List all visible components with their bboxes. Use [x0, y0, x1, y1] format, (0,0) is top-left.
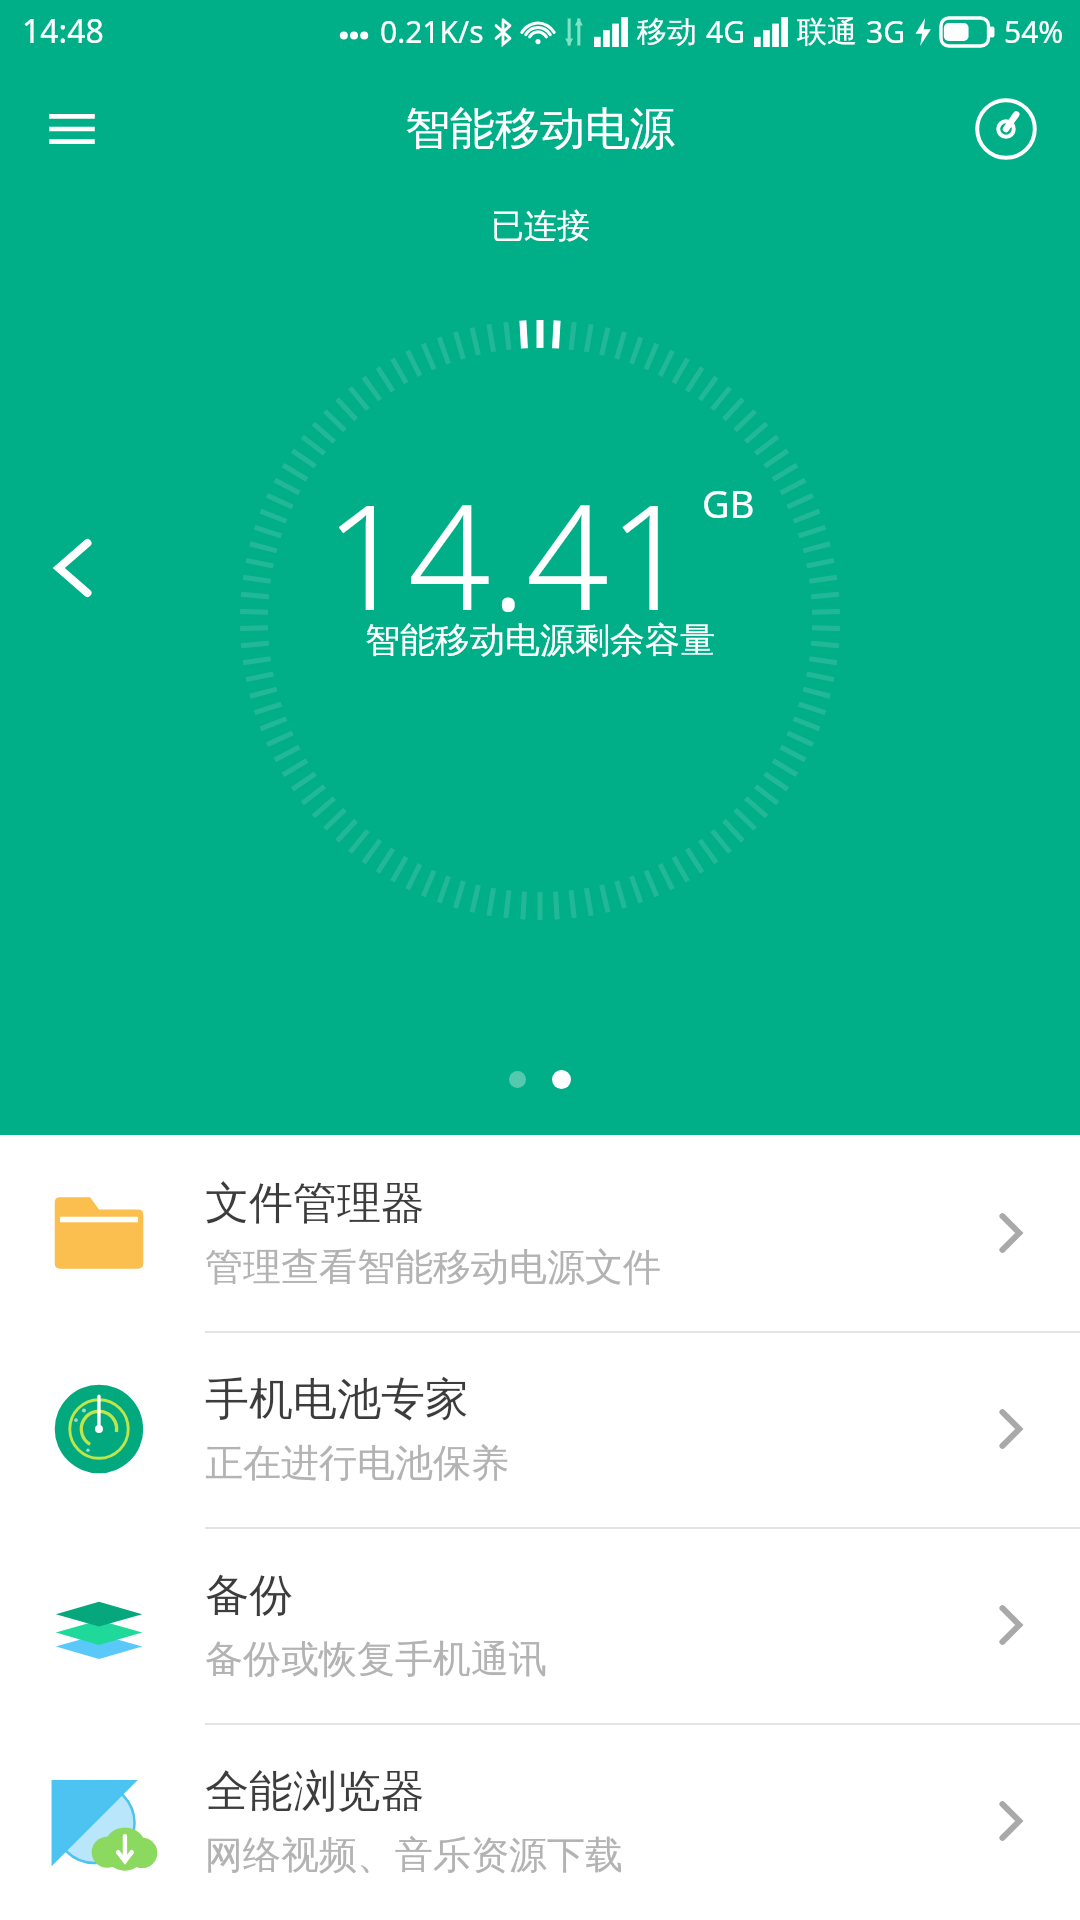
- staticText: 54%: [1004, 11, 1064, 52]
- staticText: 14:48: [22, 9, 104, 53]
- button[interactable]: Menu: [34, 91, 110, 167]
- staticText: 移动: [637, 13, 697, 51]
- button[interactable]: Previous page: [18, 516, 122, 620]
- button[interactable]: 手机电池专家: [0, 1331, 1080, 1527]
- staticText: 3G: [866, 11, 905, 52]
- staticText: 管理查看智能移动电源文件: [205, 1243, 661, 1291]
- staticText: 智能移动电源: [405, 101, 675, 158]
- button[interactable]: 全能浏览器: [0, 1723, 1080, 1919]
- staticText: 备份或恢复手机通讯: [205, 1635, 547, 1683]
- staticText: 14.41: [325, 455, 692, 652]
- button[interactable]: 文件管理器: [0, 1135, 1080, 1331]
- button[interactable]: Speed meter: [970, 93, 1042, 165]
- staticText: 联通: [797, 13, 857, 51]
- staticText: 全能浏览器: [205, 1764, 425, 1819]
- staticText: 网络视频、音乐资源下载: [205, 1831, 623, 1879]
- staticText: 0.21K/s: [380, 11, 484, 52]
- staticText: 正在进行电池保养: [205, 1439, 509, 1487]
- staticText: 已连接: [491, 205, 590, 247]
- staticText: 手机电池专家: [205, 1372, 469, 1427]
- button[interactable]: 备份: [0, 1527, 1080, 1723]
- staticText: 文件管理器: [205, 1176, 425, 1231]
- staticText: 智能移动电源剩余容量: [365, 618, 715, 662]
- staticText: 4G: [706, 11, 745, 52]
- staticText: 备份: [205, 1568, 293, 1623]
- staticText: GB: [702, 477, 755, 529]
